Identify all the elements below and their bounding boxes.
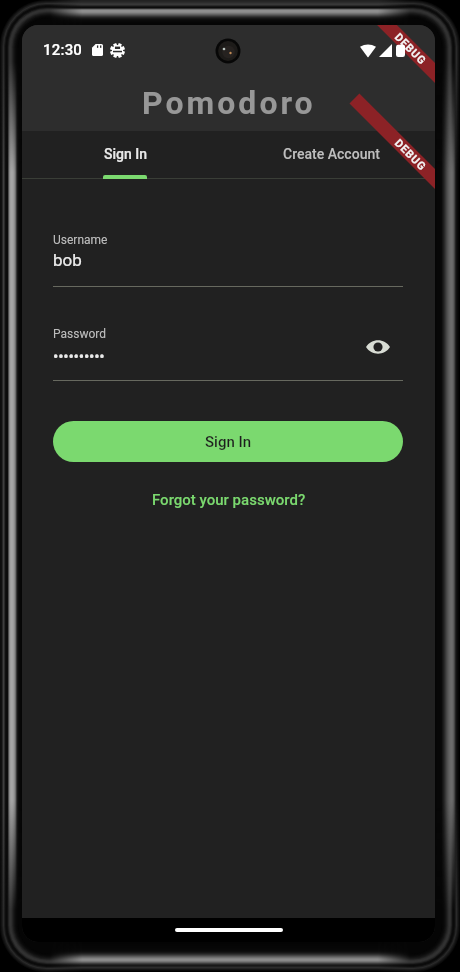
button[interactable]: Show password <box>362 331 394 363</box>
button[interactable]: Sign In <box>53 421 403 462</box>
staticText: DEBUG <box>392 31 429 68</box>
staticText: Sign In <box>205 433 252 451</box>
staticText: Username <box>53 233 108 247</box>
staticText: Forgot your password? <box>152 491 306 509</box>
button[interactable]: Sign In <box>22 131 228 179</box>
button[interactable]: Forgot your password? <box>144 487 314 513</box>
staticText: Password <box>53 327 107 341</box>
staticText: Pomodoro <box>142 84 316 122</box>
staticText: 12:30 <box>43 41 83 59</box>
button[interactable]: Create Account <box>228 131 435 179</box>
staticText: DEBUG <box>392 137 429 174</box>
staticText: •••••••••• <box>53 347 105 366</box>
staticText: Create Account <box>283 146 380 162</box>
staticText: Sign In <box>104 146 147 162</box>
staticText: bob <box>53 250 82 270</box>
